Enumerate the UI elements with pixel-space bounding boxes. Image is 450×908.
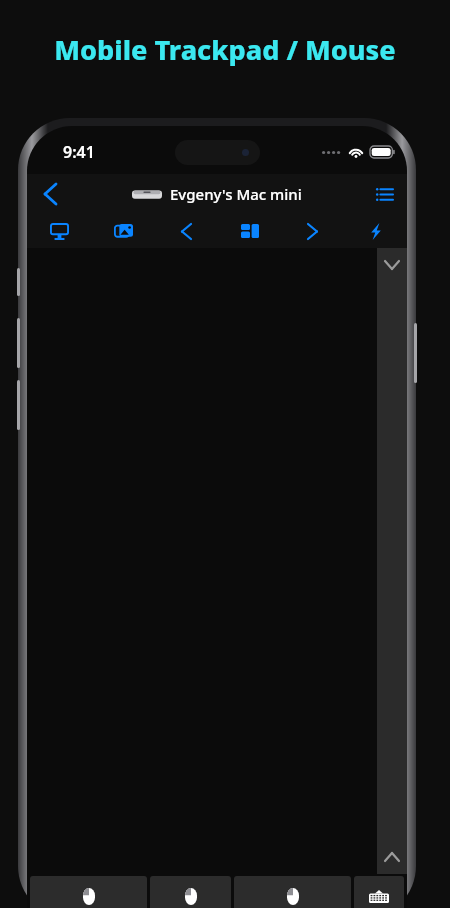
button[interactable]: Left click — [30, 876, 147, 908]
button[interactable]: Back — [27, 174, 73, 214]
button[interactable]: Middle click — [150, 876, 231, 908]
button[interactable]: Screenshots — [91, 214, 155, 248]
button[interactable]: Display — [27, 214, 91, 248]
staticText: Mobile Trackpad / Mouse — [0, 31, 450, 68]
button[interactable]: Evgeny's Mac mini — [132, 184, 302, 204]
staticText: Evgeny's Mac mini — [170, 184, 302, 204]
button[interactable]: List — [361, 174, 407, 214]
button[interactable]: Next — [281, 214, 344, 248]
button[interactable]: Windows — [218, 214, 281, 248]
button[interactable]: Right click — [234, 876, 351, 908]
button[interactable]: Scroll up — [377, 840, 407, 874]
button[interactable]: Power — [344, 214, 407, 248]
button[interactable]: Previous — [155, 214, 218, 248]
button[interactable]: Keyboard — [354, 876, 404, 908]
button[interactable]: Scroll down — [377, 248, 407, 282]
staticText: 9:41 — [63, 141, 95, 163]
